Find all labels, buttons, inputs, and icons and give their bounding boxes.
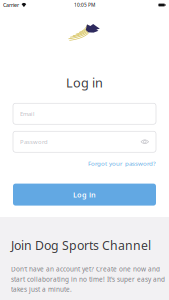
staticText: 10:05 PM bbox=[74, 2, 95, 8]
button[interactable]: Password bbox=[13, 131, 156, 152]
staticText: Password bbox=[20, 138, 48, 146]
staticText: Join Dog Sports Channel bbox=[11, 237, 151, 254]
staticText: Forgot your password? bbox=[88, 159, 156, 168]
button[interactable]: Log in bbox=[13, 184, 156, 206]
staticText: Email bbox=[20, 110, 35, 118]
staticText: Log in bbox=[73, 190, 96, 200]
staticText: Don't have an account yet? Create one no… bbox=[11, 265, 165, 294]
staticText: Carrier bbox=[3, 1, 19, 9]
button[interactable]: Forgot your password? bbox=[88, 159, 156, 168]
staticText: Log in bbox=[66, 74, 103, 91]
button[interactable]: Email bbox=[13, 103, 156, 124]
